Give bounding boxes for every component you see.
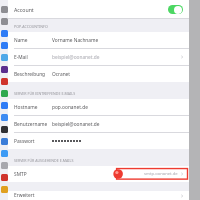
staticText: SERVER FÜR AUSGEHENDE E-MAILS (14, 158, 74, 163)
staticText: beispiel@oonanet.de (52, 121, 100, 128)
button[interactable]: App icon (1, 150, 8, 157)
button[interactable]: Erweitert (8, 191, 189, 200)
button[interactable]: App icon (1, 162, 8, 169)
staticText: Account (14, 6, 34, 13)
staticText: E-Mail (14, 54, 28, 61)
button[interactable]: App icon (1, 6, 8, 13)
staticText: beispiel@oonanet.de (52, 54, 100, 61)
button[interactable]: App icon (1, 126, 8, 133)
staticText: Ocranet (52, 71, 71, 78)
button[interactable]: Name (8, 32, 189, 48)
staticText: smtp.oonanet.de (144, 171, 178, 177)
staticText: Hostname (14, 104, 38, 111)
staticText: Benutzername (14, 121, 48, 128)
button[interactable]: App icon (1, 66, 8, 73)
staticText: Name (14, 37, 28, 44)
staticText: SERVER FÜR EINTREFFENDE E-MAILS (14, 91, 76, 96)
button[interactable]: App icon (1, 30, 8, 37)
button[interactable]: Account (8, 0, 189, 19)
button[interactable]: App icon (1, 54, 8, 61)
staticText: POP-ACCOUNTINFO (14, 24, 48, 29)
button[interactable]: Account enabled toggle (168, 5, 183, 14)
staticText: Passwort (14, 138, 35, 145)
button[interactable]: App icon (1, 18, 8, 25)
button[interactable]: App icon (1, 102, 8, 109)
button[interactable]: SMTP (8, 166, 189, 182)
button[interactable]: App icon (1, 114, 8, 121)
staticText: pop.oonanet.de (52, 104, 88, 111)
button[interactable]: App icon (1, 138, 8, 145)
staticText: SMTP (14, 171, 27, 178)
button[interactable]: Beschreibung (8, 66, 189, 82)
button[interactable]: App icon (1, 174, 8, 181)
button[interactable]: E-Mail (8, 49, 189, 65)
button[interactable]: Benutzername (8, 116, 189, 132)
button[interactable]: Passwort (8, 133, 189, 149)
button[interactable]: App icon (1, 78, 8, 85)
button[interactable]: App icon (1, 90, 8, 97)
staticText: Vorname Nachname (52, 37, 99, 44)
button[interactable]: Hostname (8, 99, 189, 115)
staticText: Erweitert (14, 192, 35, 199)
button[interactable]: App icon (1, 42, 8, 49)
staticText: Beschreibung (14, 71, 46, 78)
button[interactable]: App icon (1, 186, 8, 193)
